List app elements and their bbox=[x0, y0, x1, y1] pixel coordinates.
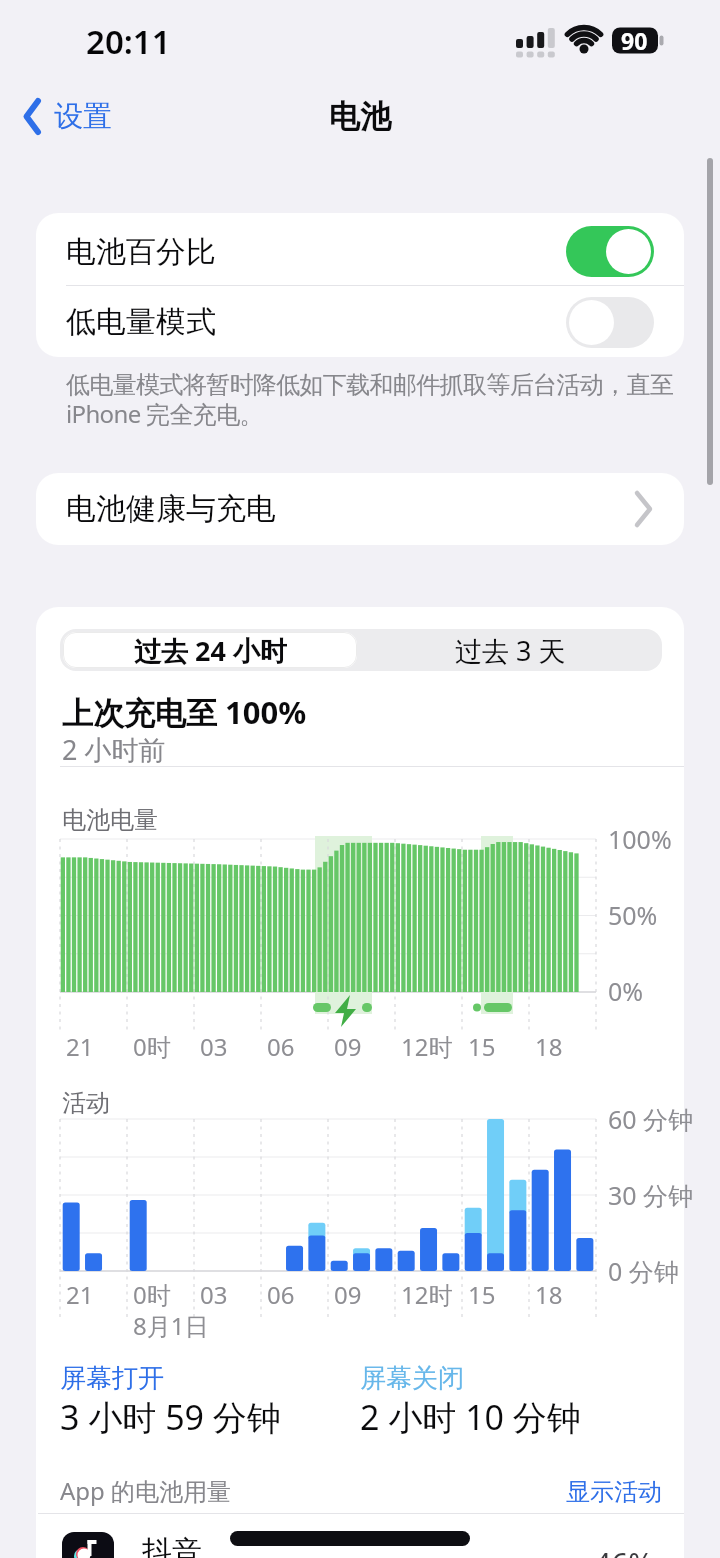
staticText: 12时 bbox=[401, 1030, 453, 1063]
staticText: 设置 bbox=[54, 98, 112, 135]
staticText: 60 分钟 bbox=[608, 1102, 694, 1136]
staticText: 03 bbox=[200, 1030, 228, 1063]
staticText: 50% bbox=[608, 898, 658, 932]
staticText: 15 bbox=[468, 1278, 496, 1311]
staticText: 15 bbox=[468, 1030, 496, 1063]
staticText: 0时 bbox=[133, 1278, 171, 1311]
staticText: 8月1日 bbox=[133, 1309, 209, 1342]
button[interactable]: 显示活动 bbox=[402, 1477, 662, 1503]
staticText: 06 bbox=[267, 1278, 295, 1311]
button[interactable] bbox=[36, 1514, 684, 1558]
staticText: 20:11 bbox=[86, 19, 171, 64]
staticText: 12时 bbox=[401, 1278, 453, 1311]
staticText: 电池 bbox=[329, 97, 391, 136]
staticText: 活动 bbox=[62, 1088, 110, 1118]
staticText: 21 bbox=[66, 1030, 94, 1063]
staticText: 09 bbox=[334, 1030, 362, 1063]
staticText: 2 小时前 bbox=[62, 731, 166, 768]
button[interactable] bbox=[36, 473, 684, 545]
button[interactable]: 过去 3 天 bbox=[360, 632, 660, 668]
button[interactable]: 过去 24 小时 bbox=[63, 632, 357, 668]
staticText: 30 分钟 bbox=[608, 1178, 694, 1212]
staticText: 90 bbox=[621, 25, 648, 56]
staticText: 屏幕关闭 bbox=[360, 1362, 464, 1395]
staticText: 03 bbox=[200, 1278, 228, 1311]
button[interactable] bbox=[36, 213, 684, 285]
staticText: 显示活动 bbox=[566, 1477, 662, 1503]
staticText: 过去 3 天 bbox=[455, 632, 566, 668]
staticText: 0时 bbox=[133, 1030, 171, 1063]
button[interactable] bbox=[566, 297, 654, 348]
staticText: 18 bbox=[535, 1278, 563, 1311]
staticText: 06 bbox=[267, 1030, 295, 1063]
staticText: 46% bbox=[594, 1543, 654, 1558]
staticText: 电池健康与充电 bbox=[66, 490, 276, 528]
staticText: 0 分钟 bbox=[608, 1254, 679, 1288]
staticText: App 的电池用量 bbox=[60, 1474, 232, 1507]
staticText: 2 小时 10 分钟 bbox=[360, 1394, 581, 1440]
staticText: 屏幕打开 bbox=[60, 1362, 164, 1395]
button[interactable] bbox=[566, 226, 654, 277]
staticText: 18 bbox=[535, 1030, 563, 1063]
staticText: 电池电量 bbox=[62, 805, 158, 835]
staticText: 100% bbox=[608, 822, 672, 856]
staticText: 3 小时 59 分钟 bbox=[60, 1394, 281, 1440]
staticText: 低电量模式将暂时降低如下载和邮件抓取等后台活动，直至 iPhone 完全充电。 bbox=[66, 370, 674, 430]
staticText: 抖音 bbox=[142, 1533, 202, 1558]
staticText: 电池百分比 bbox=[66, 233, 216, 271]
staticText: 上次充电至 100% bbox=[62, 691, 307, 733]
button[interactable] bbox=[36, 286, 684, 357]
staticText: 0% bbox=[608, 974, 644, 1008]
staticText: 21 bbox=[66, 1278, 94, 1311]
staticText: 过去 24 小时 bbox=[134, 632, 287, 668]
staticText: 09 bbox=[334, 1278, 362, 1311]
button[interactable] bbox=[20, 96, 120, 136]
staticText: 低电量模式 bbox=[66, 303, 216, 341]
